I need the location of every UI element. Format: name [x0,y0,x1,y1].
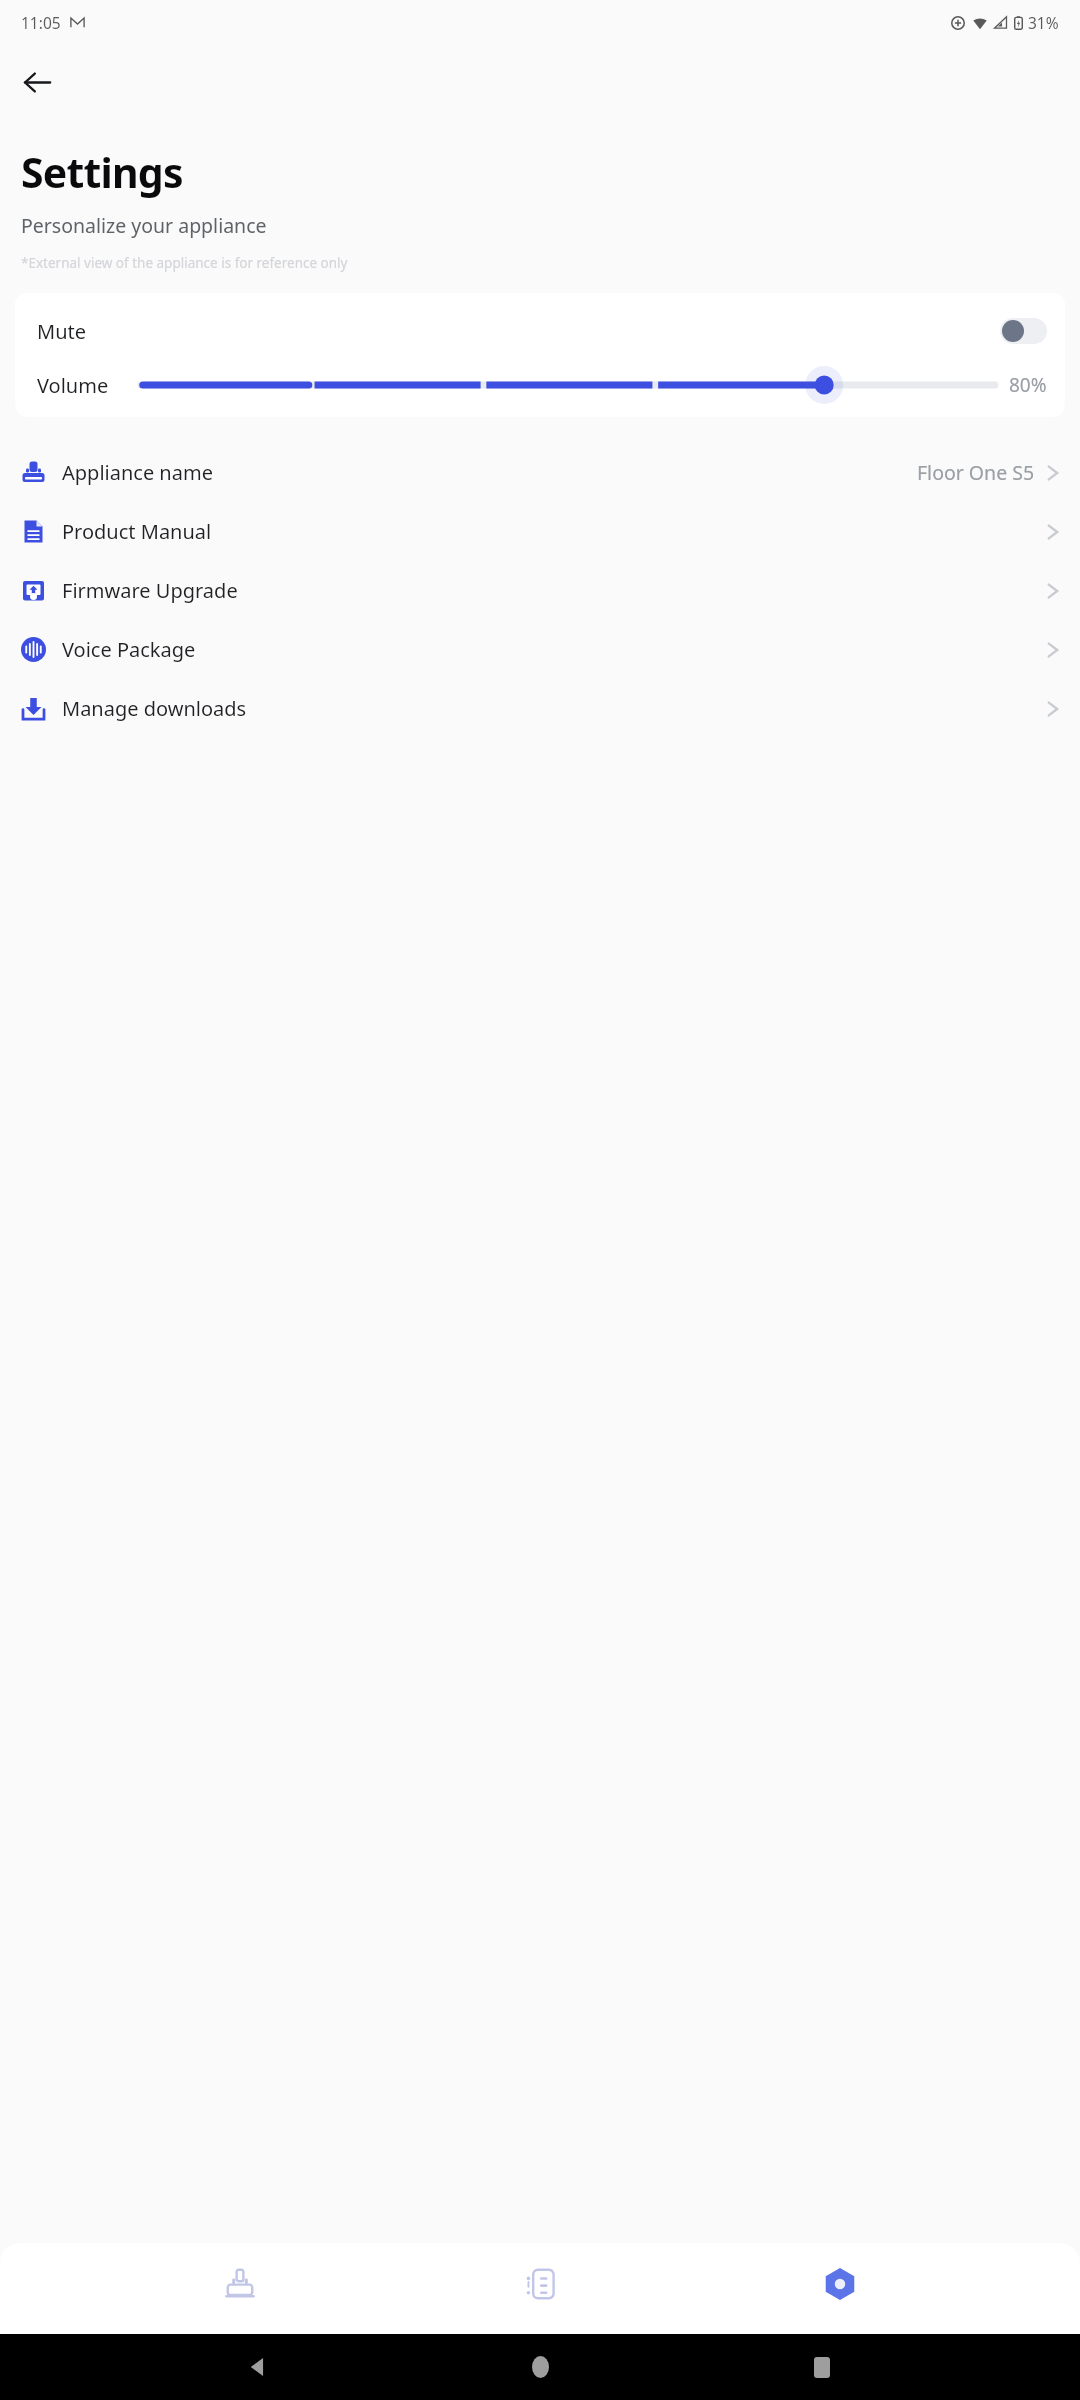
button[interactable]: Manage downloads [0,679,1080,738]
button[interactable]: Home [516,2343,564,2391]
staticText: *External view of the appliance is for r… [21,254,348,272]
staticText: Firmware Upgrade [62,577,238,604]
button[interactable]: Mute toggle [1000,318,1047,344]
button[interactable]: Logs [480,2243,600,2334]
button[interactable]: Appliance [180,2243,300,2334]
staticText: 31% [1028,12,1059,33]
staticText: Personalize your appliance [21,212,267,239]
button[interactable]: Mute [15,311,1065,351]
button[interactable]: Back [234,2343,282,2391]
button[interactable]: Back [10,55,64,109]
staticText: 11:05 [21,12,61,33]
staticText: Mute [37,318,86,345]
button[interactable]: Recents [798,2343,846,2391]
button[interactable] [141,363,995,407]
button[interactable]: Appliance name [0,443,1080,502]
button[interactable]: Firmware Upgrade [0,561,1080,620]
button[interactable]: Voice Package [0,620,1080,679]
button[interactable]: Settings [780,2243,900,2334]
staticText: 80% [1009,372,1047,398]
staticText: Manage downloads [62,695,247,722]
staticText: Appliance name [62,459,213,486]
staticText: Volume [37,372,109,399]
staticText: Voice Package [62,636,196,663]
staticText: Floor One S5 [917,459,1035,486]
button[interactable]: Product Manual [0,502,1080,561]
staticText: Product Manual [62,518,212,545]
staticText: Settings [21,144,183,200]
